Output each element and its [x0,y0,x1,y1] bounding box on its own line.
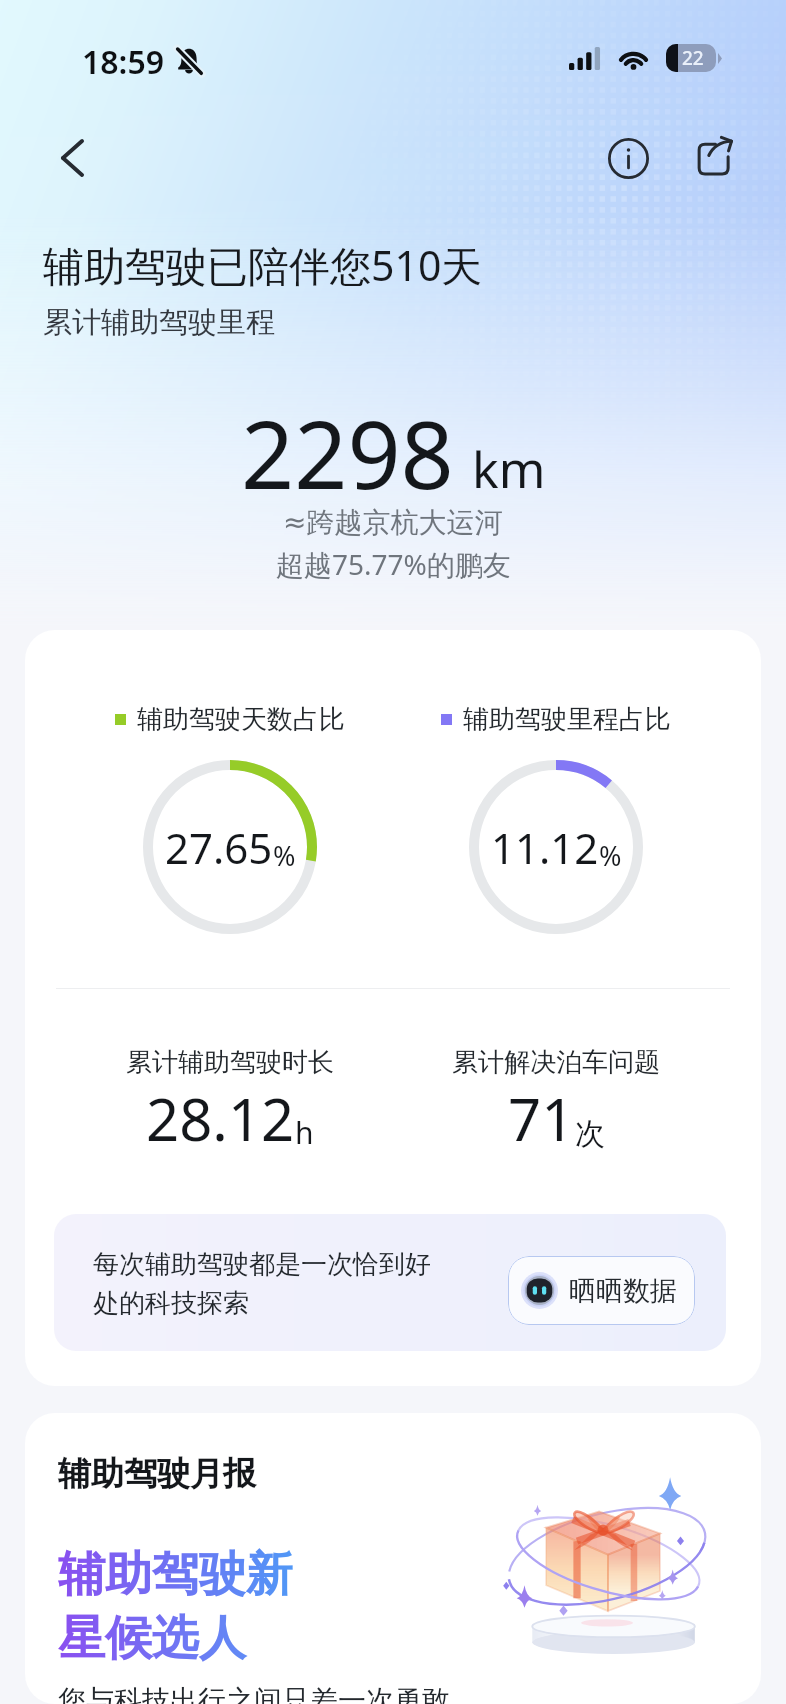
staticText: 11.12 [491,819,599,876]
staticText: 累计辅助驾驶时长 [126,1046,334,1079]
staticText: % [599,837,622,874]
staticText: ≈跨越京杭大运河 [283,505,503,540]
staticText: 辅助驾驶天数占比 [137,703,345,736]
staticText: 星候选人 [58,1609,246,1668]
button[interactable]: Info [596,126,660,190]
staticText: 辅助驾驶月报 [58,1453,256,1495]
staticText: 晒晒数据 [569,1274,677,1308]
staticText: % [273,837,296,874]
staticText: 22 [682,45,704,71]
staticText: 辅助驾驶新 [58,1545,293,1604]
staticText: 71 [508,1079,575,1158]
staticText: 18:59 [82,40,165,84]
staticText: h [295,1112,314,1153]
staticText: 辅助驾驶已陪伴您510天 [43,237,483,293]
button[interactable]: Back [38,124,106,192]
staticText: 处的科技探索 [93,1287,249,1320]
staticText: 次 [575,1115,605,1153]
staticText: 超越75.77%的鹏友 [276,545,511,583]
staticText: 27.65 [165,819,273,876]
staticText: 辅助驾驶里程占比 [463,703,671,736]
staticText: 2298 [241,390,454,517]
button[interactable]: Share [681,126,745,190]
staticText: 每次辅助驾驶都是一次恰到好 [93,1248,431,1281]
staticText: 您与科技出行之间只差一次勇敢 [58,1683,450,1704]
staticText: km [472,435,546,503]
staticText: 累计解决泊车问题 [452,1046,660,1079]
staticText: 28.12 [146,1079,295,1158]
staticText: 累计辅助驾驶里程 [43,304,275,341]
button[interactable]: 晒晒数据 [508,1256,695,1325]
